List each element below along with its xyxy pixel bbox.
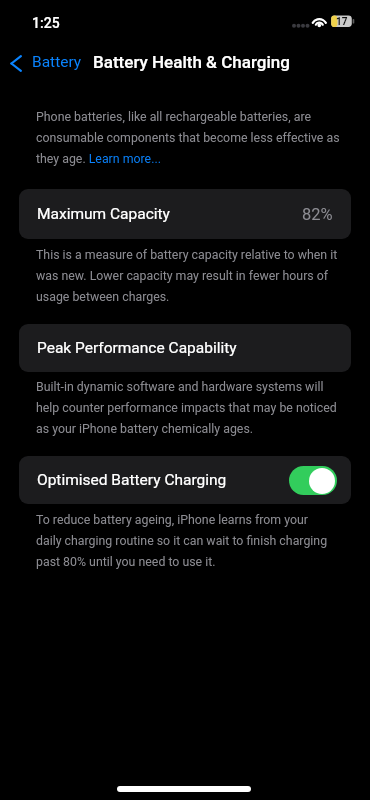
button[interactable]: Peak Performance Capability	[19, 324, 351, 372]
staticText: 1:25	[32, 15, 60, 31]
button[interactable]: Battery	[1, 48, 90, 76]
staticText: Phone batteries, like all rechargeable b…	[36, 110, 340, 166]
staticText: To reduce battery ageing, iPhone learns …	[36, 513, 328, 569]
button[interactable]: Optimised Battery Charging toggle	[289, 466, 337, 495]
staticText: Maximum Capacity	[37, 205, 170, 223]
staticText: 82%	[302, 205, 333, 224]
staticText: This is a measure of battery capacity re…	[36, 248, 338, 304]
staticText: Battery	[32, 53, 82, 71]
staticText: Optimised Battery Charging	[37, 471, 227, 489]
staticText: 17	[336, 16, 348, 28]
staticText: Built-in dynamic software and hardware s…	[36, 380, 337, 436]
staticText: Battery Health & Charging	[93, 52, 290, 72]
staticText: Peak Performance Capability	[37, 339, 237, 357]
button[interactable]: Maximum Capacity	[19, 189, 351, 239]
